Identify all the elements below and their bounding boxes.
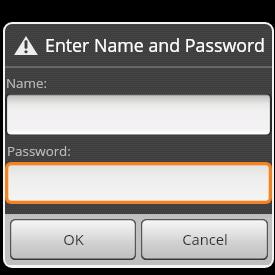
button[interactable]: OK [10, 219, 136, 260]
staticText: Password: [7, 142, 71, 160]
staticText: Cancel [182, 229, 228, 249]
staticText: Enter Name and Password [45, 33, 265, 57]
button[interactable]: Cancel [141, 219, 268, 260]
button[interactable]: Enter Name and Password [5, 33, 272, 57]
staticText: Name: [6, 74, 48, 92]
button[interactable] [5, 162, 272, 204]
button[interactable] [5, 94, 272, 135]
staticText: OK [63, 229, 84, 249]
other: Warning [15, 34, 37, 55]
